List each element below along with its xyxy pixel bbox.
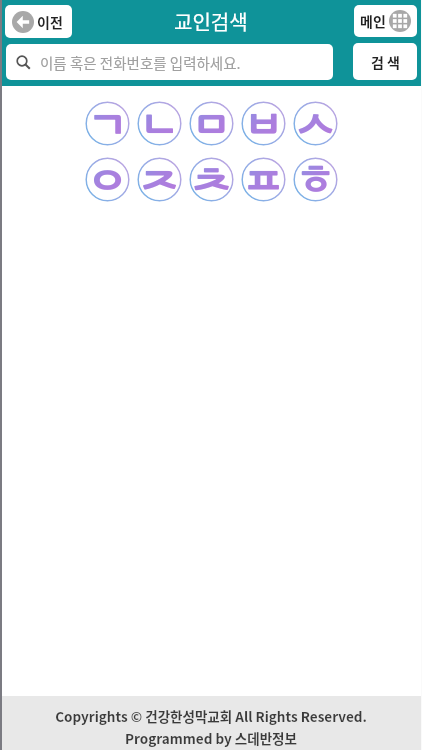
button[interactable]: 이전 (5, 5, 72, 38)
button[interactable]: 이름 혹은 전화번호를 입력하세요. (6, 44, 333, 80)
staticText: 메인 (360, 11, 386, 31)
staticText: ㄱ (85, 101, 130, 146)
button[interactable]: ㅎ (293, 157, 338, 202)
button[interactable]: ㄱ (85, 101, 130, 146)
staticText: ㅅ (293, 101, 338, 146)
button[interactable]: ㅊ (189, 157, 234, 202)
button[interactable]: ㅇ (85, 157, 130, 202)
button[interactable]: ㅈ (137, 157, 182, 202)
staticText: ㅁ (189, 101, 234, 146)
staticText: ㄴ (137, 101, 182, 146)
staticText: 이름 혹은 전화번호를 입력하세요. (40, 52, 241, 73)
staticText: ㅍ (241, 157, 286, 202)
staticText: 교인검색 (174, 7, 248, 36)
button[interactable]: ㅍ (241, 157, 286, 202)
staticText: 검 색 (371, 52, 400, 72)
staticText: ㅈ (137, 157, 182, 202)
staticText: ㅎ (293, 157, 338, 202)
button[interactable]: ㅂ (241, 101, 286, 146)
button[interactable]: 메인 (354, 5, 417, 37)
staticText: Copyrights © 건강한성막교회 All Rights Reserved… (55, 706, 367, 726)
button[interactable]: ㅅ (293, 101, 338, 146)
staticText: ㅇ (85, 157, 130, 202)
staticText: ㅊ (189, 157, 234, 202)
button[interactable]: ㅁ (189, 101, 234, 146)
button[interactable]: 검 색 (353, 43, 417, 80)
button[interactable]: ㄴ (137, 101, 182, 146)
staticText: Programmed by 스데반정보 (125, 728, 297, 748)
staticText: ㅂ (241, 101, 286, 146)
staticText: 이전 (37, 12, 63, 32)
